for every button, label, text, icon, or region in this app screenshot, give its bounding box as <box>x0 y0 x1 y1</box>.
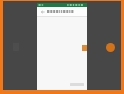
button[interactable]: Action <box>106 43 115 52</box>
button[interactable]: Back <box>39 8 46 15</box>
button[interactable] <box>47 8 65 15</box>
